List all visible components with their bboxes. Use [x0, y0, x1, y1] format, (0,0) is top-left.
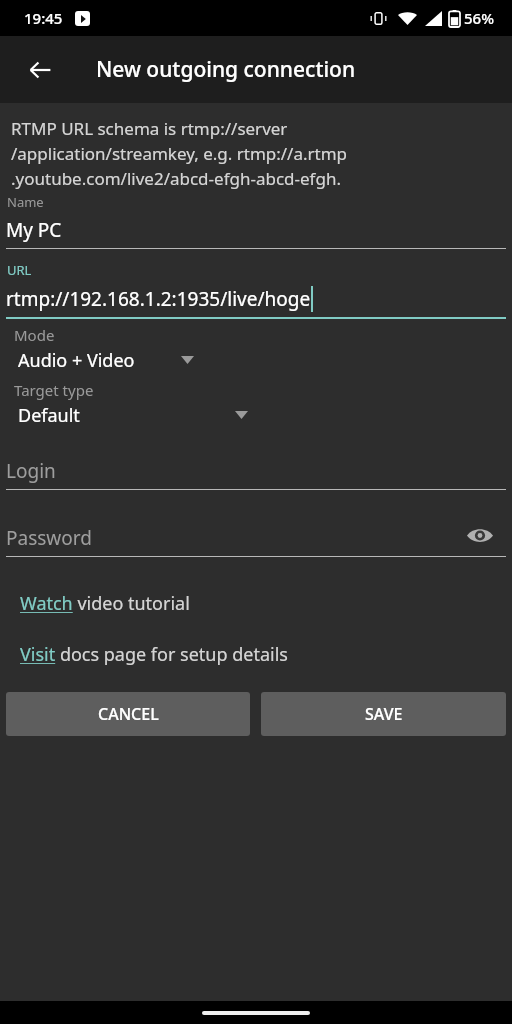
staticText: Login [6, 458, 56, 484]
staticText: CANCEL [98, 703, 159, 725]
staticText: Password [6, 525, 92, 551]
staticText: Target type [14, 380, 94, 400]
button[interactable]: Audio + Video [0, 345, 512, 375]
staticText: 19:45 [24, 8, 63, 28]
staticText: rtmp://192.168.1.2:1935/live/hoge [6, 286, 311, 312]
button[interactable]: Password [6, 519, 506, 557]
staticText: RTMP URL schema is rtmp://server [11, 117, 288, 140]
staticText: New outgoing connection [96, 55, 356, 84]
button[interactable]: Watch video tutorial [20, 591, 512, 616]
button[interactable]: Default [0, 400, 512, 430]
button[interactable]: SAVE [261, 692, 506, 736]
button[interactable]: Show password [460, 515, 500, 555]
staticText: SAVE [365, 703, 403, 725]
staticText: Name [7, 193, 44, 211]
staticText: Default [18, 403, 80, 428]
staticText: Visit docs page for setup details [20, 642, 288, 667]
button[interactable]: CANCEL [6, 692, 250, 736]
button[interactable]: Visit docs page for setup details [20, 642, 512, 667]
staticText: Audio + Video [18, 348, 135, 373]
staticText: Mode [14, 325, 55, 345]
button[interactable]: Back [16, 46, 64, 94]
button[interactable]: rtmp://192.168.1.2:1935/live/hoge [6, 279, 506, 319]
staticText: .youtube.com/live2/abcd-efgh-abcd-efgh. [11, 167, 341, 190]
staticText: Watch video tutorial [20, 591, 190, 616]
button[interactable]: My PC [6, 211, 506, 249]
staticText: URL [7, 261, 32, 279]
staticText: /application/streamkey, e.g. rtmp://a.rt… [11, 142, 348, 165]
staticText: 56% [464, 8, 494, 28]
button[interactable]: Login [6, 452, 506, 490]
staticText: My PC [6, 217, 62, 243]
